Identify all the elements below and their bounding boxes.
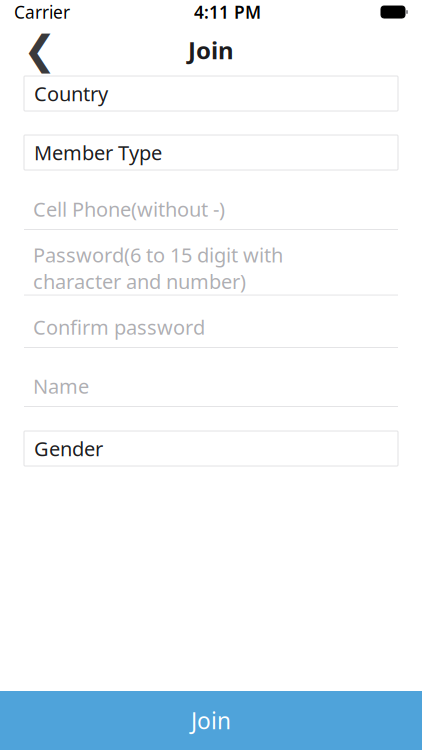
- staticText: Gender: [34, 435, 103, 462]
- button[interactable]: Country: [24, 76, 398, 111]
- button[interactable]: Cell Phone(without -): [24, 189, 398, 230]
- staticText: Carrier: [14, 0, 70, 23]
- button[interactable]: Back: [18, 28, 62, 72]
- button[interactable]: Name: [24, 366, 398, 407]
- button[interactable]: Gender: [24, 431, 398, 466]
- staticText: Name: [33, 373, 89, 399]
- button[interactable]: Password(6 to 15 digit with character an…: [24, 248, 398, 289]
- staticText: Country: [34, 80, 108, 107]
- staticText: Member Type: [34, 139, 162, 166]
- button[interactable]: Join: [0, 691, 422, 750]
- button[interactable]: Confirm password: [24, 307, 398, 348]
- staticText: Cell Phone(without -): [33, 196, 225, 222]
- button[interactable]: Member Type: [24, 135, 398, 170]
- staticText: Confirm password: [33, 314, 205, 340]
- staticText: Password(6 to 15 digit with character an…: [33, 241, 283, 294]
- staticText: Join: [188, 34, 234, 66]
- staticText: ❮: [23, 27, 57, 73]
- staticText: Join: [191, 705, 231, 735]
- staticText: 4:11 PM: [194, 0, 261, 23]
